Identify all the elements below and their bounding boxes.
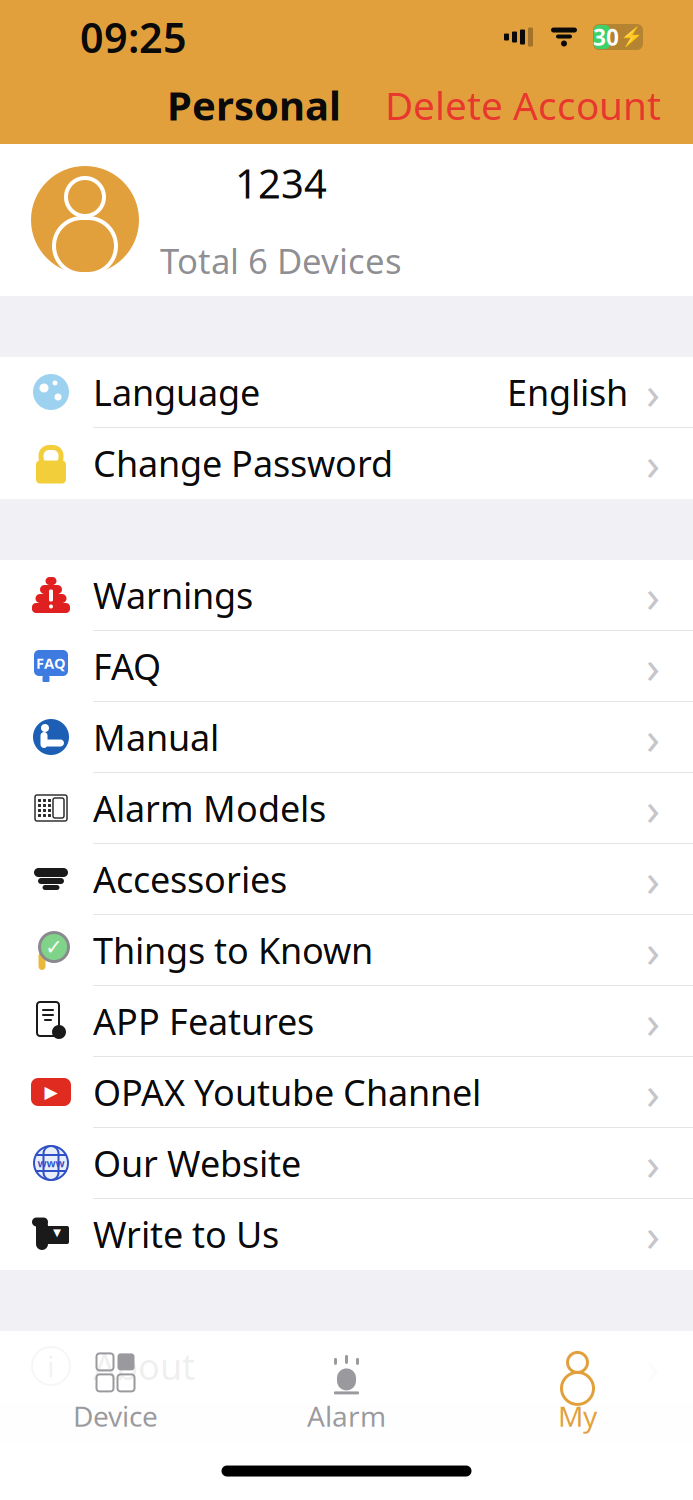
- staticText: Accessories: [93, 855, 287, 903]
- button[interactable]: Alarm: [231, 1342, 462, 1442]
- staticText: About: [93, 1342, 195, 1390]
- staticText: Alarm Models: [93, 784, 326, 832]
- staticText: English: [507, 368, 628, 416]
- staticText: Device: [73, 1397, 158, 1435]
- staticText: ›: [646, 1204, 660, 1264]
- staticText: ✓: [45, 935, 63, 959]
- staticText: ⚡: [620, 26, 643, 48]
- button[interactable]: i: [0, 1331, 693, 1402]
- button[interactable]: Language: [0, 357, 693, 428]
- staticText: OPAX Youtube Channel: [93, 1068, 481, 1116]
- button[interactable]: ▾: [0, 1199, 693, 1270]
- staticText: Personal: [167, 78, 341, 131]
- button[interactable]: Accessories: [0, 844, 693, 915]
- staticText: Write to Us: [93, 1210, 279, 1258]
- staticText: ›: [646, 1133, 660, 1193]
- staticText: ›: [646, 707, 660, 767]
- staticText: www: [37, 1156, 64, 1170]
- staticText: Things to Known: [93, 926, 373, 974]
- button[interactable]: Device: [0, 1342, 231, 1442]
- staticText: Alarm: [307, 1397, 386, 1435]
- button[interactable]: Warnings: [0, 560, 693, 631]
- button[interactable]: www: [0, 1128, 693, 1199]
- staticText: ›: [646, 636, 660, 696]
- staticText: Language: [93, 368, 260, 416]
- staticText: My: [558, 1397, 597, 1435]
- staticText: ›: [646, 362, 660, 422]
- staticText: 30: [593, 22, 619, 52]
- button[interactable]: Delete Account: [385, 79, 693, 131]
- staticText: i: [47, 1346, 55, 1385]
- button[interactable]: Alarm Models: [0, 773, 693, 844]
- button[interactable]: Change Password: [0, 428, 693, 499]
- button[interactable]: 1234: [0, 144, 693, 296]
- button[interactable]: APP Features: [0, 986, 693, 1057]
- staticText: APP Features: [93, 997, 314, 1045]
- staticText: ›: [646, 1062, 660, 1122]
- staticText: ›: [646, 991, 660, 1051]
- button[interactable]: FAQ: [0, 631, 693, 702]
- staticText: Manual: [93, 713, 219, 761]
- staticText: ›: [646, 433, 660, 493]
- button[interactable]: ▶: [0, 1057, 693, 1128]
- staticText: ›: [646, 920, 660, 980]
- button[interactable]: My: [462, 1342, 693, 1442]
- staticText: ›: [646, 849, 660, 909]
- staticText: Change Password: [93, 439, 393, 487]
- staticText: Delete Account: [385, 79, 661, 131]
- staticText: Total 6 Devices: [160, 237, 402, 283]
- staticText: 09:25: [80, 10, 187, 64]
- button[interactable]: Manual: [0, 702, 693, 773]
- staticText: ›: [646, 565, 660, 625]
- staticText: Our Website: [93, 1139, 301, 1187]
- staticText: FAQ: [93, 642, 161, 690]
- staticText: Warnings: [93, 571, 253, 619]
- button[interactable]: ✓: [0, 915, 693, 986]
- staticText: ›: [646, 778, 660, 838]
- staticText: ▶: [44, 1082, 57, 1102]
- staticText: FAQ: [36, 653, 66, 673]
- staticText: 1234: [235, 156, 327, 209]
- staticText: ▾: [53, 1223, 61, 1241]
